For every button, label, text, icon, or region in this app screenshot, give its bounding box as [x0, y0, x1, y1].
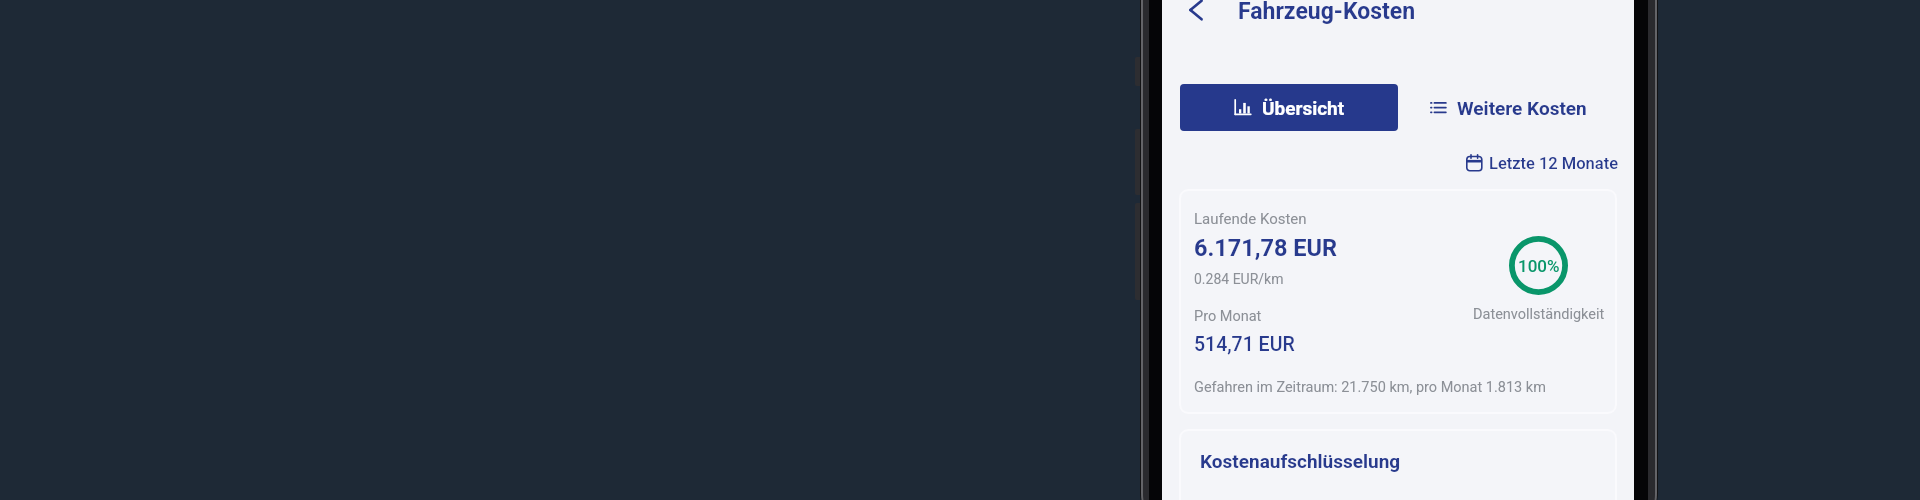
staticText: 100%	[1518, 256, 1560, 276]
button[interactable]: Übersicht	[1180, 84, 1398, 131]
button[interactable]: Letzte 12 Monate	[1466, 151, 1619, 175]
staticText: Weitere Kosten	[1457, 97, 1587, 119]
staticText: Pro Monat	[1194, 308, 1262, 325]
staticText: Fahrzeug-Kosten	[1238, 0, 1416, 25]
button[interactable]	[1179, 429, 1617, 500]
staticText: Letzte 12 Monate	[1489, 154, 1619, 173]
button[interactable]	[1179, 189, 1617, 414]
staticText: Gefahren im Zeitraum: 21.750 km, pro Mon…	[1194, 379, 1546, 396]
staticText: Datenvollständigkeit	[1473, 306, 1605, 323]
staticText: Kostenaufschlüsselung	[1200, 450, 1401, 472]
button[interactable]: Zurück	[1178, 0, 1214, 28]
button[interactable]: Weitere Kosten	[1430, 95, 1587, 121]
staticText: Übersicht	[1262, 97, 1345, 119]
staticText: 6.171,78 EUR	[1194, 234, 1338, 262]
staticText: 514,71 EUR	[1194, 333, 1295, 356]
staticText: Laufende Kosten	[1194, 210, 1307, 228]
staticText: 0.284 EUR/km	[1194, 271, 1284, 287]
